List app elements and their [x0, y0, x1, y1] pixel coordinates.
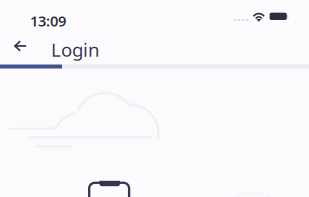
- staticText: 13:09: [30, 11, 66, 30]
- button[interactable]: Back: [5, 31, 35, 61]
- staticText: Login: [51, 37, 100, 62]
